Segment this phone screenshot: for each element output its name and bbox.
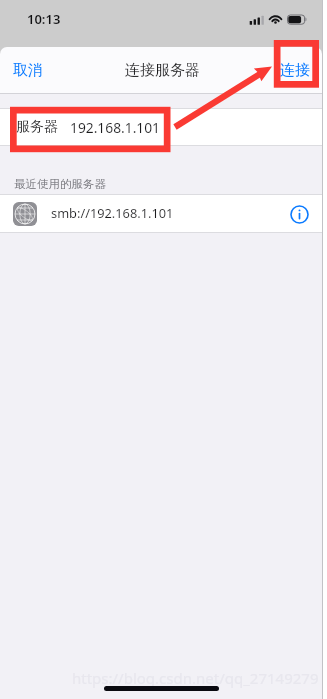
button[interactable]: 连接 [267, 47, 322, 94]
staticText: 连接服务器 [125, 61, 200, 80]
staticText: https://blog.csdn.net/qq_27149279 [72, 668, 319, 688]
staticText: 取消 [13, 61, 43, 80]
button[interactable]: Server info [289, 204, 309, 224]
staticText: 服务器 [16, 118, 58, 136]
button[interactable]: 服务器 [0, 109, 322, 145]
button[interactable]: 取消 [0, 47, 56, 94]
staticText: 192.168.1.101 [70, 118, 161, 137]
staticText: 10:13 [27, 10, 61, 28]
staticText: smb://192.168.1.101 [51, 204, 174, 221]
staticText: 连接 [280, 61, 310, 80]
staticText: 最近使用的服务器 [14, 177, 106, 191]
button[interactable]: smb://192.168.1.101 [0, 195, 322, 232]
